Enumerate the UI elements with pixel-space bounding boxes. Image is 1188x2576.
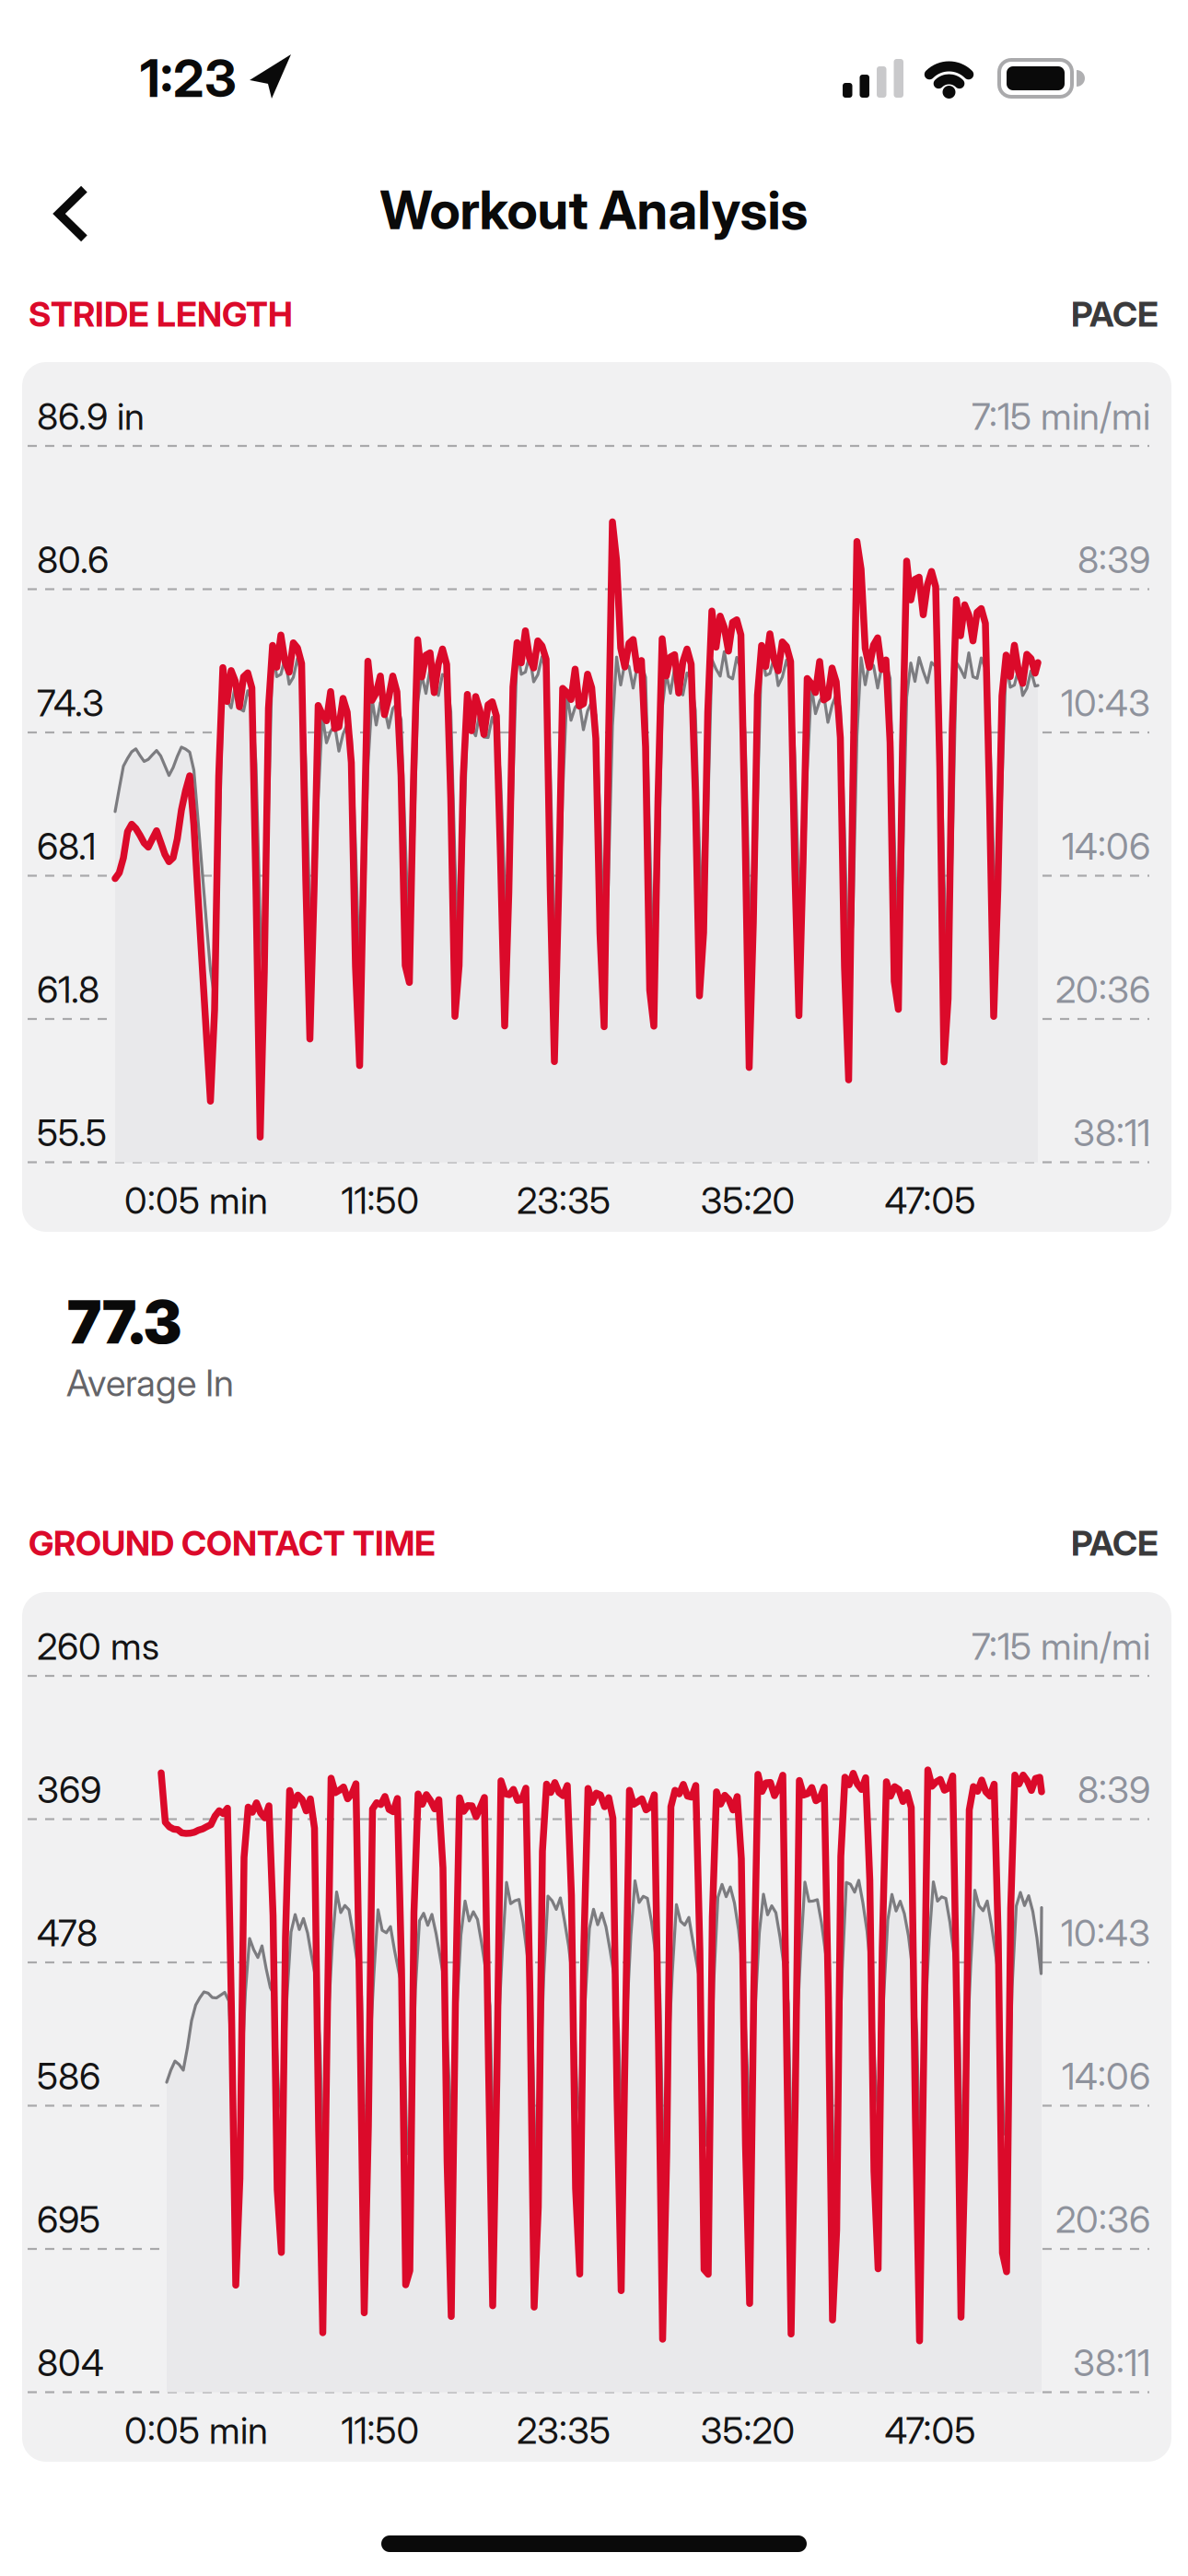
staticText: 8:39 <box>1077 537 1150 582</box>
staticText: 10:43 <box>1061 681 1150 725</box>
staticText: 61.8 <box>37 967 99 1012</box>
staticText: 38:11 <box>1073 1110 1150 1155</box>
staticText: 7:15 min/mi <box>972 1624 1150 1669</box>
staticText: 47:05 <box>885 1178 976 1223</box>
button[interactable]: Back <box>35 169 105 258</box>
staticText: PACE <box>1071 1522 1159 1564</box>
staticText: 14:06 <box>1062 2054 1150 2098</box>
staticText: 11:50 <box>341 2408 419 2453</box>
staticText: 86.9 in <box>37 394 145 439</box>
staticText: 10:43 <box>1061 1911 1150 1955</box>
staticText: 586 <box>37 2054 100 2098</box>
staticText: 1:23 <box>140 47 237 110</box>
staticText: GROUND CONTACT TIME <box>29 1522 436 1564</box>
staticText: 0:05 min <box>124 1178 268 1223</box>
staticText: Average In <box>66 1361 234 1405</box>
staticText: 47:05 <box>885 2408 976 2453</box>
staticText: 80.6 <box>37 537 109 582</box>
staticText: 77.3 <box>67 1286 181 1358</box>
staticText: 35:20 <box>700 1178 795 1223</box>
staticText: 804 <box>37 2340 104 2385</box>
staticText: 0:05 min <box>124 2408 268 2453</box>
staticText: 20:36 <box>1055 2197 1150 2242</box>
staticText: Workout Analysis <box>380 178 808 242</box>
staticText: 68.1 <box>37 824 96 869</box>
staticText: 55.5 <box>37 1110 107 1155</box>
staticText: 260 ms <box>37 1624 159 1669</box>
staticText: 11:50 <box>341 1178 419 1223</box>
staticText: 38:11 <box>1073 2340 1150 2385</box>
staticText: 369 <box>37 1767 101 1812</box>
staticText: 7:15 min/mi <box>972 394 1150 439</box>
staticText: PACE <box>1071 293 1159 335</box>
staticText: 35:20 <box>700 2408 795 2453</box>
staticText: 478 <box>37 1911 98 1955</box>
staticText: 695 <box>37 2197 100 2242</box>
staticText: 20:36 <box>1055 967 1150 1012</box>
staticText: 14:06 <box>1062 824 1150 869</box>
staticText: 8:39 <box>1077 1767 1150 1812</box>
staticText: 23:35 <box>517 2408 611 2453</box>
staticText: 23:35 <box>517 1178 611 1223</box>
staticText: 74.3 <box>37 681 104 725</box>
staticText: STRIDE LENGTH <box>29 293 293 335</box>
